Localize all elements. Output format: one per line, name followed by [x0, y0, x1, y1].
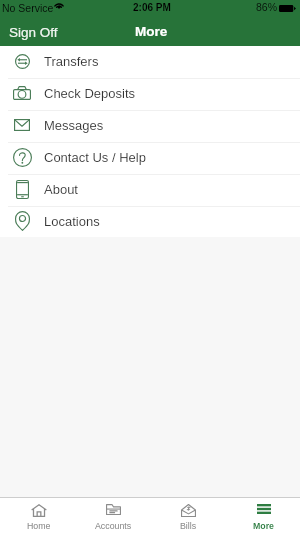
staticText: About — [44, 182, 78, 197]
button[interactable]: Contact Us / Help — [0, 141, 300, 173]
staticText: Locations — [44, 214, 100, 229]
button[interactable]: Sign Off — [0, 21, 67, 46]
staticText: Sign Off — [9, 25, 58, 40]
staticText: Transfers — [44, 54, 99, 69]
staticText: 86% — [256, 1, 278, 13]
button[interactable]: About — [0, 173, 300, 205]
button[interactable]: Messages — [0, 109, 300, 141]
staticText: More — [253, 521, 275, 531]
button[interactable]: Locations — [0, 205, 300, 237]
button[interactable]: Check Deposits — [0, 77, 300, 109]
staticText: Check Deposits — [44, 86, 136, 101]
button[interactable]: More — [225, 498, 300, 533]
button[interactable]: Accounts — [75, 498, 150, 533]
staticText: Accounts — [95, 521, 132, 531]
staticText: More — [135, 24, 168, 39]
button[interactable]: Home — [0, 498, 75, 533]
staticText: Home — [27, 521, 51, 531]
staticText: Contact Us / Help — [44, 150, 146, 165]
button[interactable]: Bills — [150, 498, 225, 533]
staticText: No Service — [2, 2, 54, 14]
staticText: Bills — [180, 521, 197, 531]
staticText: 2:06 PM — [133, 2, 171, 13]
button[interactable]: Transfers — [0, 46, 300, 77]
staticText: Messages — [44, 118, 104, 133]
